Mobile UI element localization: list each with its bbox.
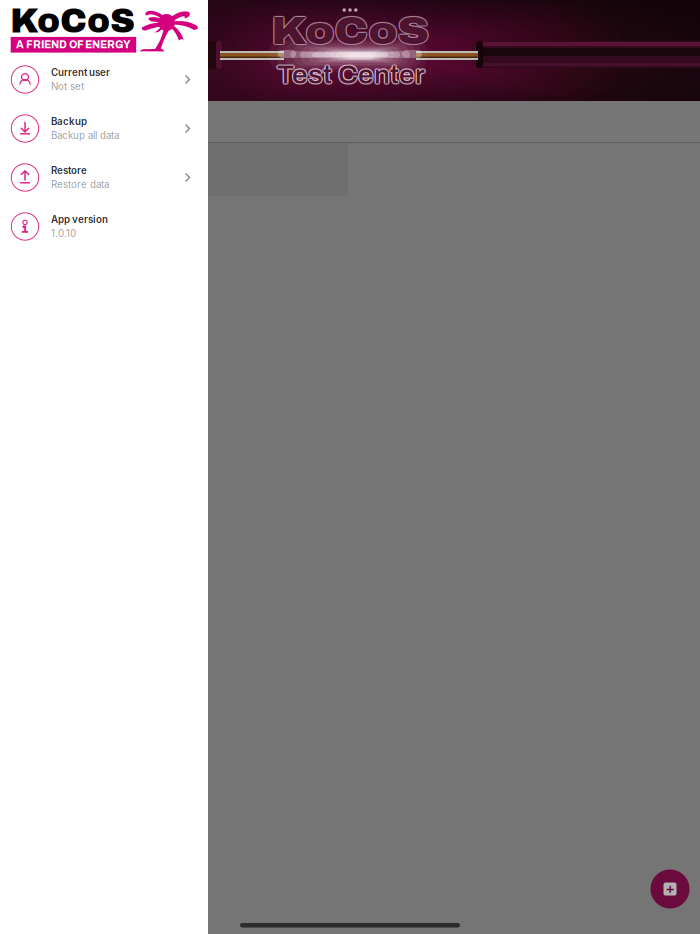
staticText: Current user	[51, 67, 110, 78]
button[interactable]: Current user	[0, 55, 208, 104]
staticText: Test Center	[277, 62, 425, 90]
staticText: KoCoS	[272, 9, 429, 51]
staticText: Test Center	[276, 61, 424, 89]
button[interactable]: Restore	[0, 153, 208, 202]
staticText: KoCoS	[270, 10, 427, 52]
staticText: Test Center	[277, 61, 425, 89]
staticText: Test Center	[278, 61, 426, 89]
button[interactable]: Backup	[0, 104, 208, 153]
staticText: KoCoS	[273, 10, 430, 52]
staticText: KoCoS	[272, 11, 429, 53]
staticText: 1.0.10	[51, 228, 76, 239]
staticText: Test Center	[278, 60, 426, 88]
staticText: Restore	[51, 165, 87, 176]
staticText: +	[666, 879, 674, 899]
staticText: Test Center	[276, 60, 424, 88]
button[interactable]: App version	[0, 202, 208, 251]
staticText: KoCoS	[271, 9, 428, 51]
staticText: Test Center	[278, 62, 426, 90]
staticText: Backup	[51, 116, 87, 127]
staticText: Backup all data	[51, 130, 119, 141]
staticText: KoCoS	[271, 11, 428, 53]
staticText: Test Center	[277, 60, 425, 88]
staticText: A FRIEND OF ENERGY	[16, 39, 131, 50]
staticText: KoCoS	[271, 10, 428, 52]
staticText: Restore data	[51, 179, 109, 190]
button[interactable]: Add	[647, 866, 693, 912]
staticText: App version	[51, 214, 108, 225]
staticText: Not set	[51, 81, 84, 92]
staticText: KoCoS	[271, 9, 428, 51]
staticText: KoCoS	[10, 2, 135, 40]
staticText: KoCoS	[271, 11, 428, 53]
staticText: Test Center	[276, 62, 424, 90]
